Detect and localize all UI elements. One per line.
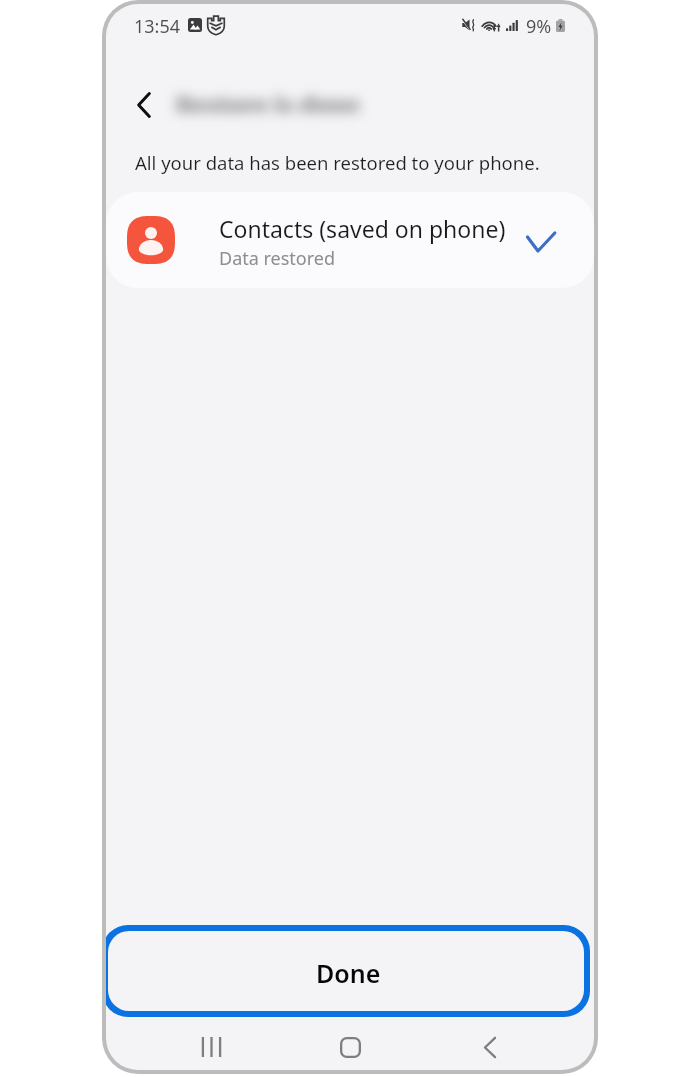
button[interactable]: Recent apps <box>189 1025 233 1069</box>
button[interactable]: Navigate up <box>122 83 166 127</box>
button[interactable]: Back <box>468 1025 512 1069</box>
staticText: All your data has been restored to your … <box>135 150 540 175</box>
button[interactable]: Home <box>328 1025 372 1069</box>
staticText: 9% <box>526 14 552 36</box>
button[interactable]: Done <box>108 931 584 1011</box>
staticText: 13:54 <box>134 14 181 36</box>
staticText: Restore is done <box>174 87 358 120</box>
staticText: Contacts (saved on phone) <box>219 213 506 244</box>
staticText: Restore is done <box>178 87 362 120</box>
staticText: Restore is done <box>176 87 360 120</box>
staticText: Data restored <box>219 246 336 271</box>
button[interactable]: Contacts (saved on phone) <box>106 192 594 288</box>
staticText: Done <box>316 956 381 990</box>
